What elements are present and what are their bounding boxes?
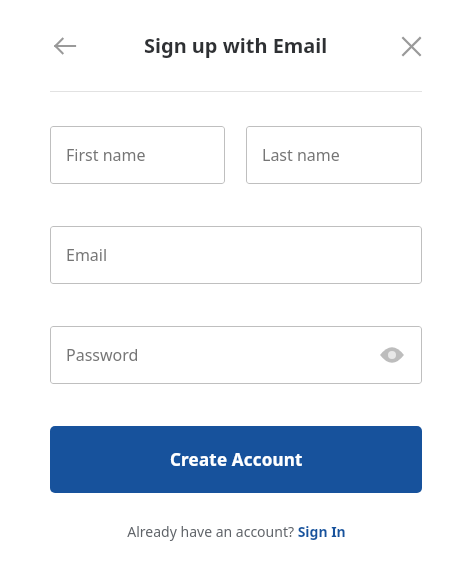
button[interactable]: Last name bbox=[246, 126, 422, 184]
staticText: Last name bbox=[262, 144, 408, 166]
staticText: Sign up with Email bbox=[144, 32, 328, 59]
staticText: Email bbox=[66, 244, 408, 266]
button[interactable]: Password bbox=[50, 326, 422, 384]
staticText: Password bbox=[66, 344, 376, 366]
button[interactable]: Back bbox=[44, 25, 86, 67]
button[interactable]: Already have an account? Sign In bbox=[123, 520, 350, 543]
button[interactable]: Email bbox=[50, 226, 422, 284]
button[interactable]: Close bbox=[390, 25, 432, 67]
button[interactable]: First name bbox=[50, 126, 225, 184]
staticText: Create Account bbox=[170, 448, 303, 471]
button[interactable]: Create Account bbox=[50, 426, 422, 493]
button[interactable]: Show password bbox=[376, 339, 408, 371]
staticText: First name bbox=[66, 144, 211, 166]
staticText: Already have an account? Sign In bbox=[127, 522, 346, 541]
